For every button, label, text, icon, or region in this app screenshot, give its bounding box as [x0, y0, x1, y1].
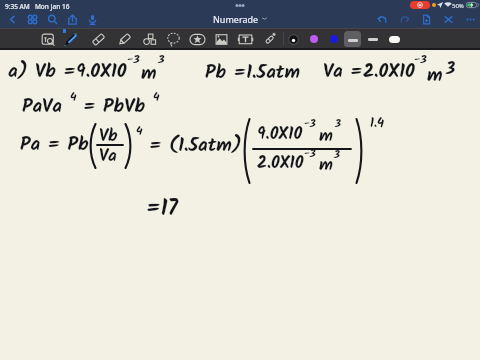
staticText: Vb [99, 123, 118, 150]
button[interactable]: Record audio [85, 12, 99, 26]
button[interactable]: Close [441, 12, 455, 26]
button[interactable]: Share [65, 12, 79, 26]
staticText: -3 [414, 50, 427, 69]
button[interactable]: Redo [397, 12, 411, 26]
button[interactable]: Search [45, 12, 59, 26]
staticText: m [319, 123, 333, 150]
staticText: -3 [304, 115, 316, 133]
button[interactable]: More options [463, 12, 477, 26]
button[interactable]: Thick stroke [385, 31, 403, 47]
staticText: Pa = Pb [20, 130, 89, 160]
button[interactable]: Pages [25, 12, 39, 26]
staticText: Numerade [213, 13, 259, 25]
button[interactable]: New page [419, 12, 433, 26]
button[interactable]: Multitasking controls [232, 3, 248, 8]
button[interactable]: Thin stroke [365, 31, 381, 47]
button[interactable]: Pen [62, 31, 78, 47]
button[interactable]: Insert image [213, 31, 229, 47]
staticText: Pb =1.5atm [205, 58, 300, 88]
button[interactable]: Lasso [165, 31, 181, 47]
staticText: Va [99, 143, 117, 170]
staticText: -3 [304, 145, 316, 163]
button[interactable]: Back [5, 12, 19, 26]
button[interactable]: Shapes [142, 31, 158, 47]
staticText: m [319, 152, 333, 179]
staticText: 3 [446, 56, 456, 83]
button[interactable]: Colour [306, 31, 322, 47]
staticText: 2.0X10 [257, 150, 304, 177]
staticText: 3 [334, 146, 341, 164]
staticText: m [141, 59, 157, 89]
button[interactable]: Eraser [90, 31, 106, 47]
staticText: = (1.5atm) [149, 131, 242, 161]
button[interactable]: Sticker [189, 31, 205, 47]
staticText: a) Vb =9.0X10 [8, 57, 127, 87]
staticText: = PbVb [83, 92, 146, 122]
staticText: m [427, 61, 443, 91]
staticText: Va =2.0X10 [323, 57, 415, 87]
button[interactable]: Stroke pattern [344, 31, 361, 47]
staticText: =17 [146, 192, 178, 227]
staticText: 3 [158, 50, 165, 69]
staticText: 9.0X10 [257, 121, 303, 148]
button[interactable]: Screen recording [410, 1, 430, 9]
button[interactable]: Highlighter [116, 31, 132, 47]
button[interactable]: Numerade [213, 9, 267, 28]
button[interactable]: Search in note [40, 31, 56, 47]
staticText: -3 [127, 50, 140, 69]
staticText: 3 [335, 115, 342, 133]
staticText: 1.4 [370, 113, 385, 134]
staticText: 9:35 AM Mon Jan 16 [5, 2, 70, 11]
button[interactable]: Text box [237, 31, 253, 47]
staticText: 50% [452, 2, 464, 10]
button[interactable]: Colour [285, 31, 301, 47]
button[interactable]: Colour [326, 31, 342, 47]
staticText: 4 [136, 121, 143, 140]
staticText: 4 [153, 87, 160, 106]
button[interactable]: Undo [375, 12, 389, 26]
staticText: 4 [70, 87, 77, 106]
button[interactable]: Magic pen [261, 31, 277, 47]
staticText: PaVa [22, 92, 62, 122]
